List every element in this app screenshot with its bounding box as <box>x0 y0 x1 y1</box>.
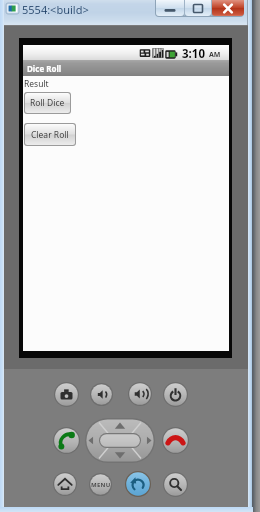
button[interactable]: End call <box>162 427 189 454</box>
button[interactable]: Search <box>163 472 188 497</box>
staticText: Roll Dice <box>30 97 65 109</box>
staticText: Result <box>24 78 49 90</box>
button[interactable]: Clear Roll <box>25 124 75 145</box>
button[interactable]: Home <box>53 472 77 496</box>
staticText: AM <box>209 50 221 60</box>
button[interactable]: Volume down <box>90 383 113 406</box>
staticText: 5554:<build> <box>22 2 89 17</box>
button[interactable]: Power <box>163 382 188 407</box>
button[interactable]: Directional pad <box>85 418 155 463</box>
button[interactable]: Maximize <box>185 0 211 16</box>
button[interactable]: Close <box>212 0 244 16</box>
button[interactable]: Menu <box>89 473 112 496</box>
button[interactable]: Back <box>125 471 151 497</box>
staticText: MENU <box>91 481 111 489</box>
staticText: 3:10 <box>182 46 205 61</box>
button[interactable]: Camera <box>54 382 79 407</box>
button[interactable]: Call <box>53 427 80 454</box>
staticText: Clear Roll <box>31 129 69 141</box>
button[interactable]: Roll Dice <box>25 93 70 113</box>
button[interactable]: Volume up <box>128 382 152 406</box>
staticText: Dice Roll <box>27 63 62 74</box>
button[interactable]: Minimize <box>156 0 184 16</box>
